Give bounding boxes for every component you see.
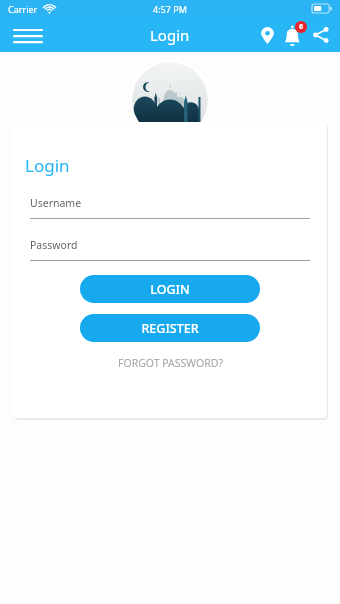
staticText: 4:57 PM xyxy=(153,3,187,15)
button[interactable]: Share xyxy=(308,20,334,50)
staticText: FORGOT PASSWORD? xyxy=(118,356,223,370)
staticText: Login xyxy=(25,154,70,177)
button[interactable]: LOGIN xyxy=(80,275,260,303)
staticText: LOGIN xyxy=(150,281,190,298)
staticText: Carrier xyxy=(8,3,38,15)
button[interactable]: Password xyxy=(30,238,310,261)
button[interactable]: Username xyxy=(30,196,310,219)
button[interactable]: FORGOT PASSWORD? xyxy=(13,354,327,372)
button[interactable]: Menu xyxy=(8,17,48,52)
staticText: Login xyxy=(150,25,190,45)
staticText: 6 xyxy=(299,22,304,32)
staticText: Username xyxy=(30,196,82,210)
button[interactable]: Location xyxy=(254,20,280,50)
staticText: REGISTER xyxy=(141,320,199,337)
staticText: Password xyxy=(30,238,78,252)
button[interactable]: Notifications xyxy=(280,20,308,50)
button[interactable]: REGISTER xyxy=(80,314,260,342)
